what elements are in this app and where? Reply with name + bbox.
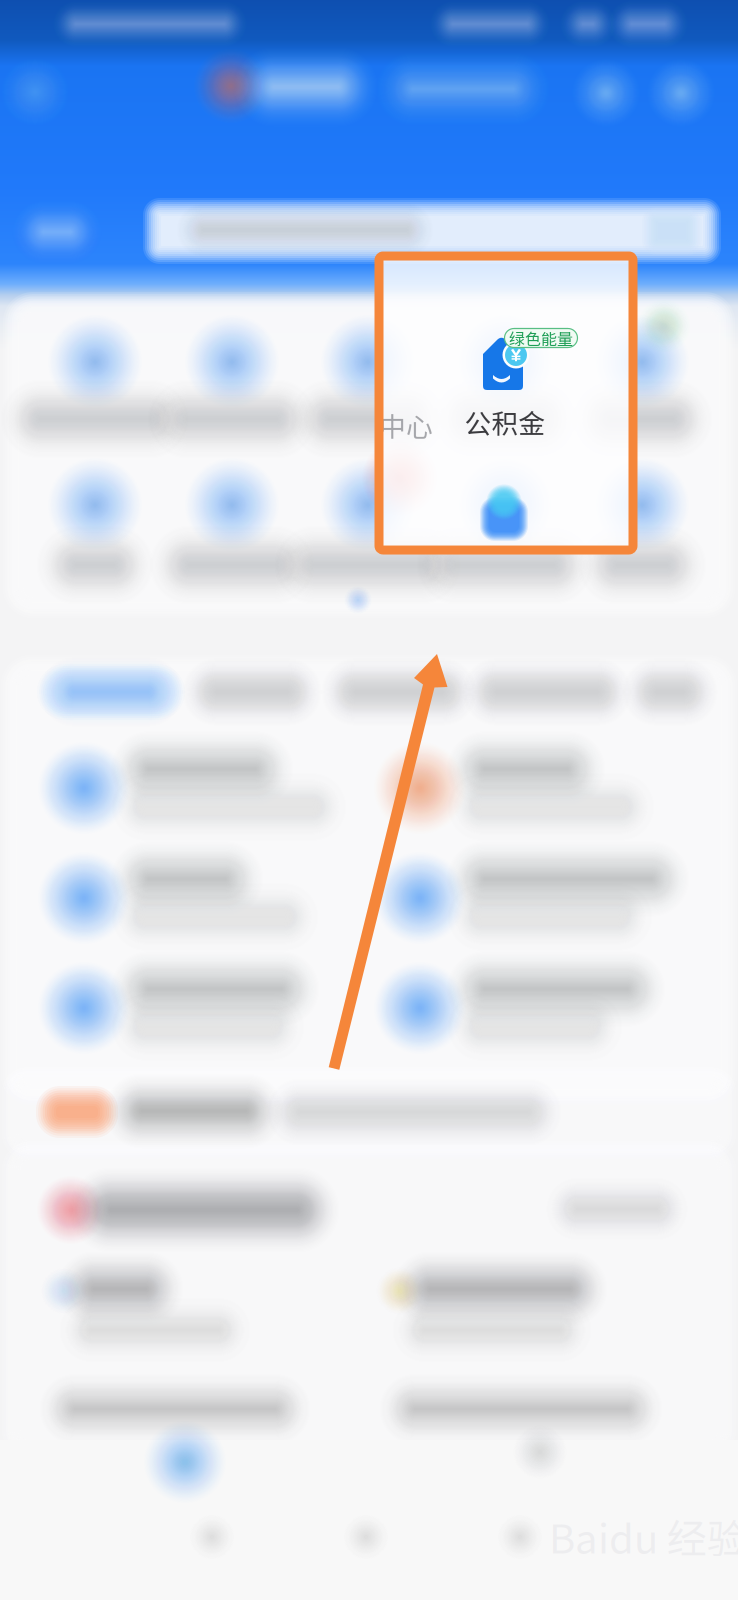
staticText: 绿色能量 [509,326,573,350]
staticText: Baidu 经验 [549,1507,738,1565]
staticText: 公积金 [464,403,545,441]
staticText: 中心 [379,406,433,444]
